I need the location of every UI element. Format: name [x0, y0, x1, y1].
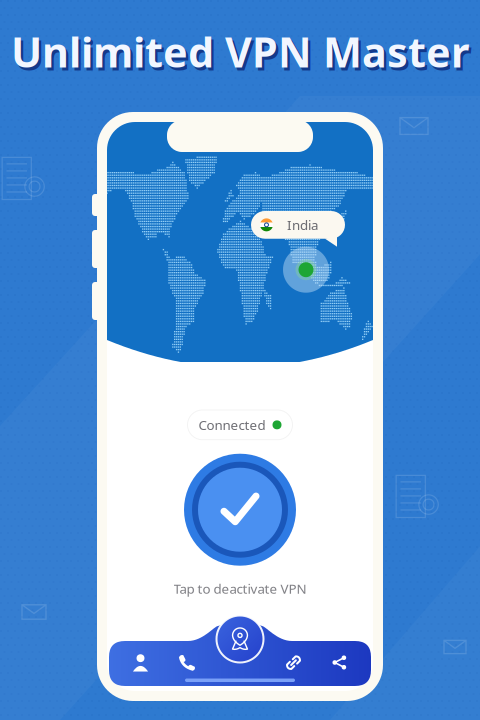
staticText: Unlimited VPN Master	[11, 24, 469, 79]
button[interactable]: Deactivate VPN	[184, 454, 296, 566]
staticText: India	[287, 216, 318, 234]
button[interactable]: Select location	[214, 613, 266, 665]
button[interactable]: Connection	[270, 640, 316, 685]
button[interactable]: Profile	[117, 640, 163, 685]
staticText: Unlimited VPN Master	[13, 27, 471, 82]
button[interactable]: Share	[316, 640, 362, 685]
staticText: Tap to deactivate VPN	[173, 580, 306, 597]
button[interactable]: Support	[163, 640, 209, 685]
staticText: Connected	[198, 416, 265, 434]
